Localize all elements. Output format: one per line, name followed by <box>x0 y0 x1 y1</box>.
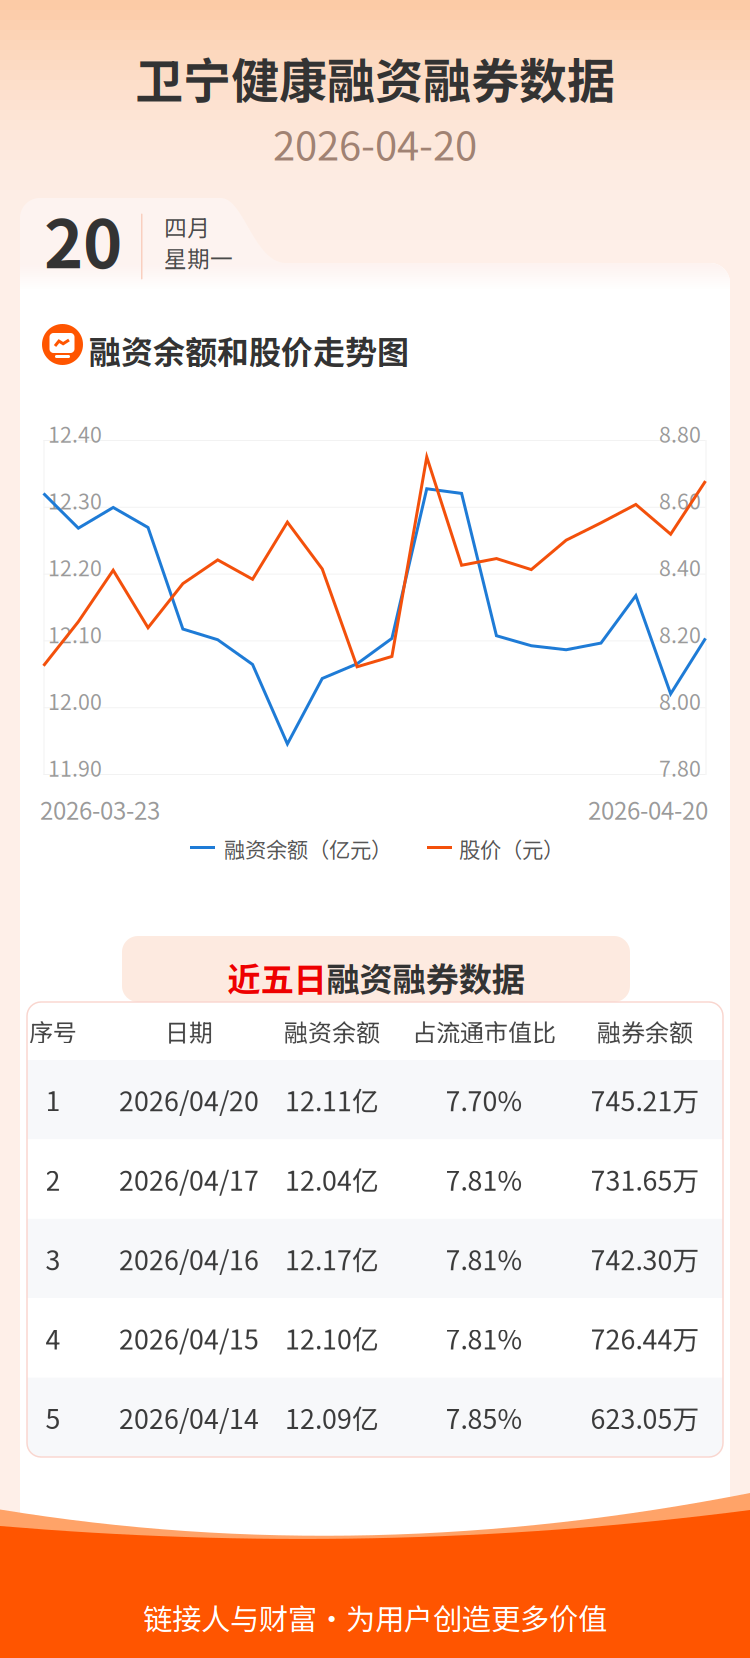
staticText: 3 <box>45 1239 60 1278</box>
staticText: 8.20 <box>659 618 701 649</box>
staticText: 融券余额 <box>597 1014 693 1048</box>
staticText: 12.00 <box>48 685 102 716</box>
staticText: 7.81% <box>445 1319 522 1357</box>
staticText: 8.00 <box>659 685 701 716</box>
staticText: 卫宁健康融资融券数据 <box>135 43 615 112</box>
staticText: 2026/04/14 <box>119 1398 259 1437</box>
staticText: 12.40 <box>48 418 102 449</box>
staticText: 20 <box>44 191 122 287</box>
staticText: 融资余额和股价走势图 <box>89 327 409 373</box>
staticText: 12.20 <box>48 552 102 582</box>
staticText: 2026/04/15 <box>119 1319 259 1357</box>
staticText: 623.05万 <box>590 1398 699 1437</box>
staticText: 11.90 <box>48 752 102 783</box>
staticText: 2026-04-20 <box>273 114 477 172</box>
staticText: 占流通市值比 <box>412 1014 556 1048</box>
staticText: 四月 <box>164 210 210 243</box>
staticText: 2026/04/17 <box>119 1160 259 1198</box>
staticText: 2 <box>45 1160 60 1198</box>
staticText: 8.60 <box>659 485 701 516</box>
staticText: 12.11亿 <box>285 1080 379 1119</box>
staticText: 融资余额 <box>284 1014 380 1048</box>
staticText: 12.04亿 <box>285 1160 379 1198</box>
staticText: 7.80 <box>659 752 701 783</box>
staticText: 2026/04/20 <box>119 1080 259 1119</box>
staticText: 1 <box>45 1080 60 1119</box>
staticText: 12.30 <box>48 485 102 516</box>
staticText: 7.70% <box>445 1080 522 1119</box>
staticText: 4 <box>45 1319 60 1357</box>
staticText: 12.10亿 <box>285 1319 379 1357</box>
staticText: 12.09亿 <box>285 1398 379 1437</box>
staticText: 12.17亿 <box>285 1239 379 1278</box>
staticText: 731.65万 <box>590 1160 699 1198</box>
staticText: 12.10 <box>48 618 102 649</box>
staticText: 2026-04-20 <box>588 792 708 827</box>
staticText: 星期一 <box>164 241 233 274</box>
staticText: 近五日 <box>227 953 326 1001</box>
staticText: 5 <box>45 1398 60 1437</box>
staticText: 745.21万 <box>590 1080 699 1119</box>
staticText: 融资融券数据 <box>326 953 524 1001</box>
staticText: 股价（元） <box>459 833 564 864</box>
staticText: 日期 <box>165 1014 213 1048</box>
staticText: 742.30万 <box>590 1239 699 1278</box>
staticText: 726.44万 <box>590 1319 699 1357</box>
staticText: 7.85% <box>445 1398 522 1437</box>
staticText: 7.81% <box>445 1160 522 1198</box>
staticText: 2026/04/16 <box>119 1239 259 1278</box>
staticText: 8.80 <box>659 418 701 449</box>
staticText: 融资余额（亿元） <box>224 833 392 864</box>
staticText: 7.81% <box>445 1239 522 1278</box>
staticText: 序号 <box>29 1014 77 1048</box>
staticText: 2026-03-23 <box>40 792 160 827</box>
staticText: 8.40 <box>659 552 701 582</box>
staticText: 链接人与财富·为用户创造更多价值 <box>143 1596 607 1638</box>
